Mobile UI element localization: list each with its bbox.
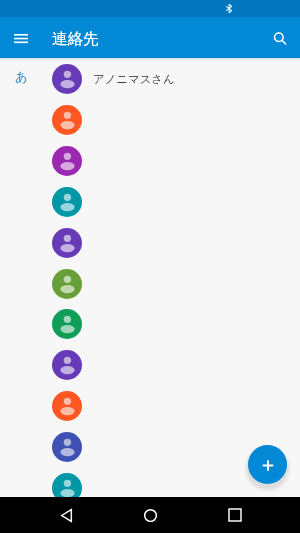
- button[interactable]: [0, 385, 300, 426]
- staticText: 連絡先: [52, 29, 99, 49]
- button[interactable]: Recents: [217, 497, 253, 533]
- button[interactable]: Add contact: [248, 445, 287, 484]
- button[interactable]: [0, 222, 300, 263]
- staticText: あ: [15, 69, 28, 85]
- button[interactable]: [0, 263, 300, 304]
- button[interactable]: [0, 426, 300, 467]
- button[interactable]: Search: [260, 18, 300, 58]
- button[interactable]: [0, 181, 300, 222]
- button[interactable]: Back: [48, 497, 84, 533]
- staticText: アノニマスさん: [93, 72, 175, 86]
- button[interactable]: [0, 344, 300, 385]
- button[interactable]: Home: [132, 497, 168, 533]
- button[interactable]: [0, 99, 300, 140]
- button[interactable]: [0, 303, 300, 344]
- button[interactable]: あ: [0, 58, 300, 99]
- button[interactable]: [0, 140, 300, 181]
- button[interactable]: [0, 467, 300, 508]
- button[interactable]: Menu: [0, 18, 40, 58]
